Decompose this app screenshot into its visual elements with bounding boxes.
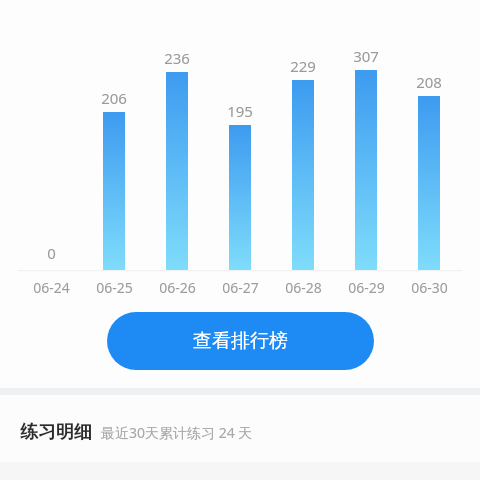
staticText: 307 [353, 46, 379, 66]
staticText: 06-30 [411, 278, 448, 297]
staticText: 195 [227, 101, 253, 121]
staticText: 06-28 [285, 278, 322, 297]
staticText: 06-27 [222, 278, 259, 297]
staticText: 236 [164, 48, 190, 68]
staticText: 229 [290, 56, 316, 76]
button[interactable]: 查看排行榜 [107, 312, 374, 370]
staticText: 06-29 [348, 278, 385, 297]
staticText: 208 [416, 72, 442, 92]
staticText: 最近30天累计练习 24 天 [101, 423, 253, 442]
staticText: 06-24 [33, 278, 70, 297]
staticText: 206 [101, 88, 127, 108]
staticText: 练习明细 [20, 421, 92, 444]
staticText: 06-25 [96, 278, 133, 297]
button[interactable]: 练习明细 [20, 416, 420, 448]
staticText: 0 [47, 243, 56, 263]
staticText: 06-26 [159, 278, 196, 297]
staticText: 查看排行榜 [193, 329, 288, 353]
